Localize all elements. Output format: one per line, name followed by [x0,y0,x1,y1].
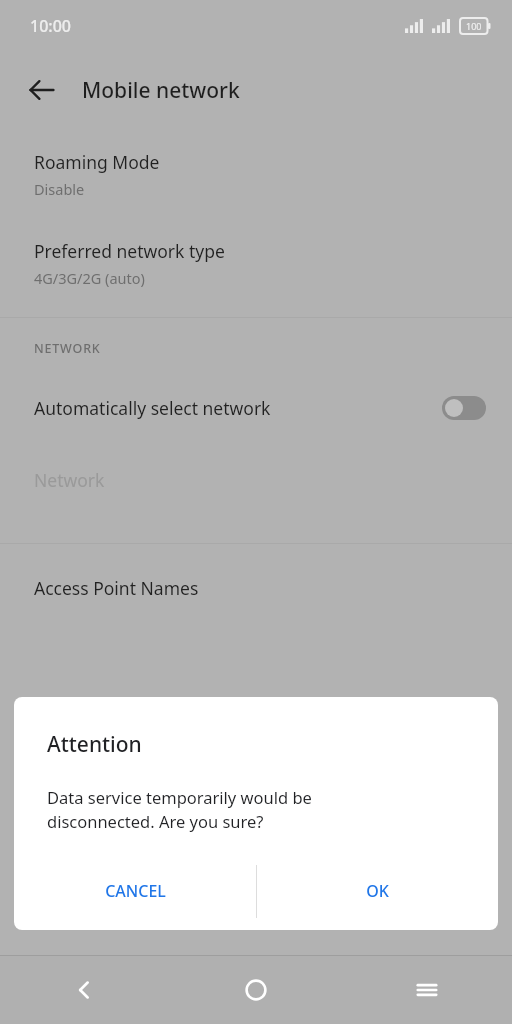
button[interactable]: Automatically select network toggle [442,396,486,420]
button[interactable]: Automatically select network [0,385,512,431]
button[interactable]: Access Point Names [0,566,512,610]
staticText: Disable [34,179,85,199]
staticText: Preferred network type [34,239,225,263]
staticText: Access Point Names [34,576,199,600]
staticText: Network [34,468,105,492]
button[interactable]: Back [0,956,170,1024]
staticText: 100 [466,20,482,32]
staticText: 4G/3G/2G (auto) [34,268,145,288]
button[interactable]: Back [18,66,66,114]
staticText: Data service temporarily would be discon… [47,786,312,833]
staticText: Roaming Mode [34,150,160,174]
button[interactable]: OK [256,852,498,930]
staticText: 10:00 [30,15,71,37]
staticText: CANCEL [105,880,166,902]
staticText: OK [366,880,389,902]
staticText: Attention [47,730,142,759]
button[interactable]: Home [170,956,341,1024]
button[interactable]: CANCEL [14,852,256,930]
staticText: Mobile network [82,76,240,105]
button[interactable]: Preferred network type [0,239,512,288]
staticText: NETWORK [34,340,101,357]
button[interactable]: Roaming Mode [0,150,512,199]
staticText: Automatically select network [34,396,271,420]
button[interactable]: Recent apps [341,956,512,1024]
